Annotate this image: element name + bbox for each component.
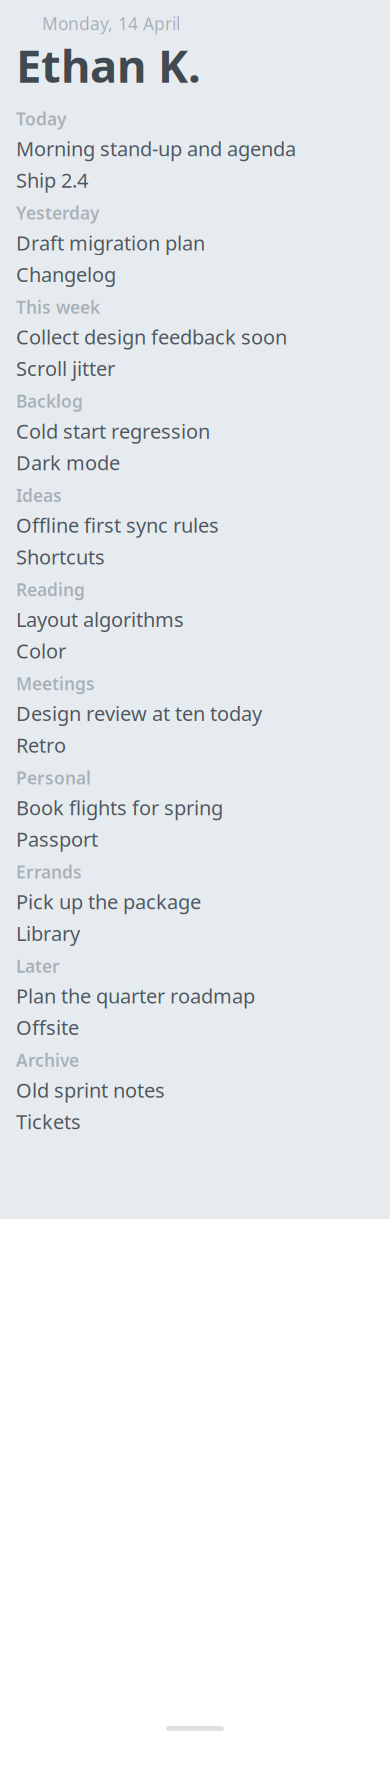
staticText: Today — [16, 107, 66, 130]
staticText: Shortcuts — [16, 543, 105, 570]
staticText: Ethan K. — [16, 35, 201, 95]
staticText: Cold start regression — [16, 418, 210, 444]
staticText: Offline first sync rules — [16, 512, 219, 538]
staticText: Morning stand-up and agenda — [16, 135, 296, 162]
staticText: Retro — [16, 732, 66, 758]
staticText: Plan the quarter roadmap — [16, 982, 255, 1009]
staticText: Ship 2.4 — [16, 167, 88, 193]
staticText: Dark mode — [16, 449, 120, 476]
staticText: Yesterday — [16, 201, 99, 224]
staticText: Collect design feedback soon — [16, 323, 287, 350]
staticText: Personal — [16, 766, 91, 789]
staticText: Old sprint notes — [16, 1077, 165, 1103]
staticText: Design review at ten today — [16, 700, 262, 727]
staticText: Archive — [16, 1049, 79, 1072]
staticText: Tickets — [16, 1108, 81, 1135]
staticText: Errands — [16, 860, 82, 883]
staticText: Pick up the package — [16, 888, 201, 915]
staticText: Color — [16, 637, 66, 664]
staticText: This week — [16, 295, 100, 318]
staticText: Book flights for spring — [16, 794, 223, 821]
staticText: Draft migration plan — [16, 229, 205, 256]
staticText: Reading — [16, 578, 85, 601]
staticText: Offsite — [16, 1014, 79, 1041]
staticText: Changelog — [16, 261, 116, 287]
staticText: Passport — [16, 826, 98, 852]
staticText: Scroll jitter — [16, 355, 115, 382]
staticText: Ideas — [16, 484, 62, 507]
staticText: Backlog — [16, 390, 83, 413]
staticText: Later — [16, 954, 60, 977]
staticText: Meetings — [16, 672, 95, 695]
staticText: Layout algorithms — [16, 606, 184, 632]
staticText: Monday, 14 April — [42, 12, 180, 35]
staticText: Library — [16, 920, 80, 946]
